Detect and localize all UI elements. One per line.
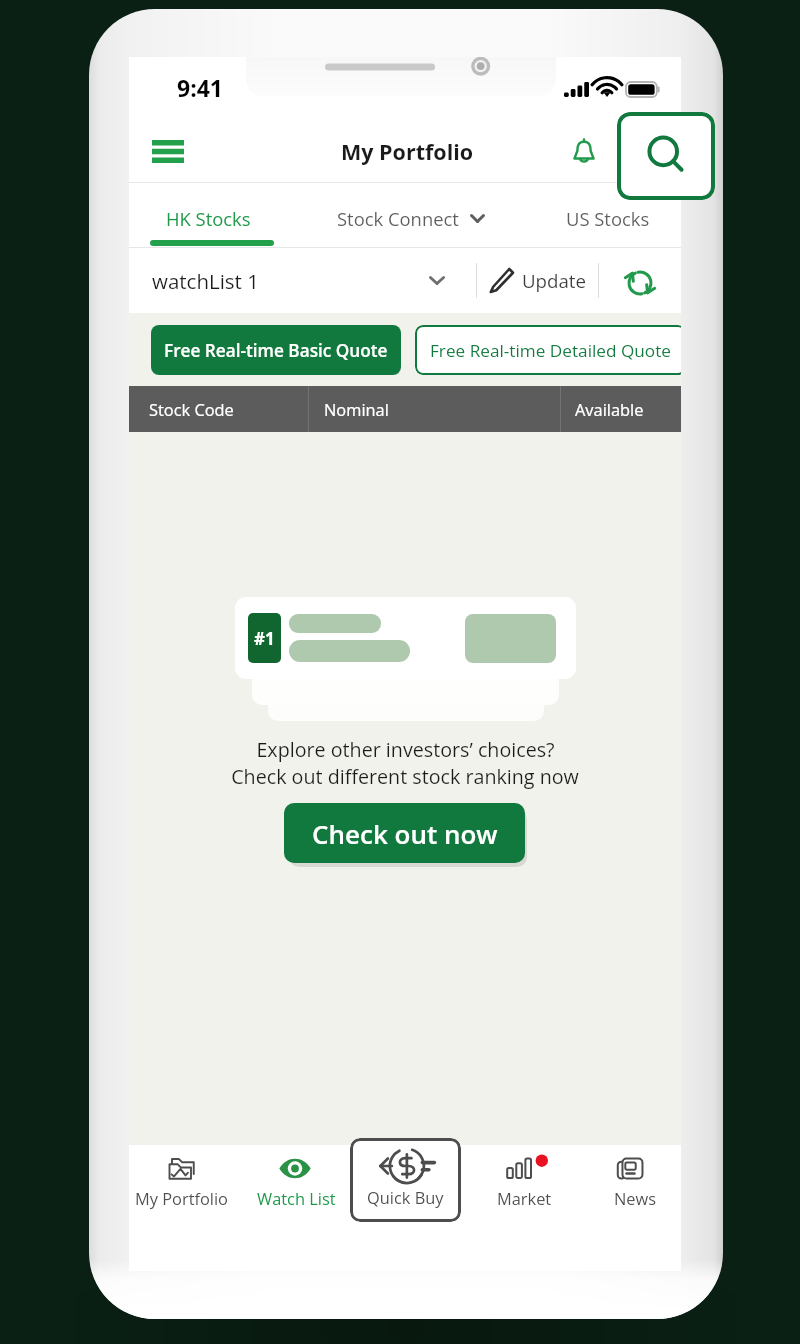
staticText: Available bbox=[575, 398, 644, 420]
button[interactable]: Watch List bbox=[233, 1145, 359, 1245]
button[interactable]: Market bbox=[459, 1145, 589, 1245]
button[interactable]: Notifications bbox=[561, 128, 607, 174]
staticText: Nominal bbox=[324, 398, 389, 420]
button[interactable]: Quick Buy bbox=[350, 1138, 461, 1222]
staticText: Update bbox=[522, 268, 587, 293]
staticText: HK Stocks bbox=[166, 206, 251, 231]
button[interactable]: News bbox=[589, 1145, 681, 1245]
staticText: News bbox=[614, 1187, 657, 1209]
staticText: #1 bbox=[254, 627, 275, 650]
button[interactable]: Refresh bbox=[599, 248, 681, 313]
staticText: Explore other investors’ choices? bbox=[256, 736, 555, 763]
button[interactable]: My Portfolio bbox=[129, 1145, 233, 1245]
button[interactable]: US Stocks bbox=[534, 182, 681, 248]
button[interactable]: HK Stocks bbox=[129, 182, 287, 248]
button[interactable]: Free Real-time Detailed Quote bbox=[415, 325, 681, 375]
staticText: Free Real-time Basic Quote bbox=[164, 339, 388, 362]
staticText: Stock Connect bbox=[337, 206, 459, 231]
staticText: My Portfolio bbox=[341, 137, 474, 166]
button[interactable]: Update bbox=[477, 248, 598, 313]
staticText: watchList 1 bbox=[152, 267, 259, 295]
staticText: Stock Code bbox=[149, 398, 234, 420]
button[interactable]: watchList 1 bbox=[129, 248, 476, 313]
button[interactable]: Menu bbox=[144, 127, 192, 175]
button[interactable]: Free Real-time Basic Quote bbox=[151, 325, 401, 375]
staticText: 9:41 bbox=[177, 72, 224, 103]
staticText: My Portfolio bbox=[135, 1187, 228, 1209]
button[interactable]: Stock Connect bbox=[287, 182, 534, 248]
staticText: Check out now bbox=[312, 816, 498, 851]
staticText: Market bbox=[497, 1187, 552, 1209]
button[interactable]: Check out now bbox=[284, 803, 525, 863]
staticText: Quick Buy bbox=[367, 1186, 444, 1208]
staticText: Free Real-time Detailed Quote bbox=[430, 339, 671, 362]
staticText: US Stocks bbox=[566, 206, 650, 231]
staticText: Check out different stock ranking now bbox=[231, 763, 579, 790]
button[interactable]: Search bbox=[617, 112, 715, 200]
staticText: Watch List bbox=[257, 1187, 336, 1209]
